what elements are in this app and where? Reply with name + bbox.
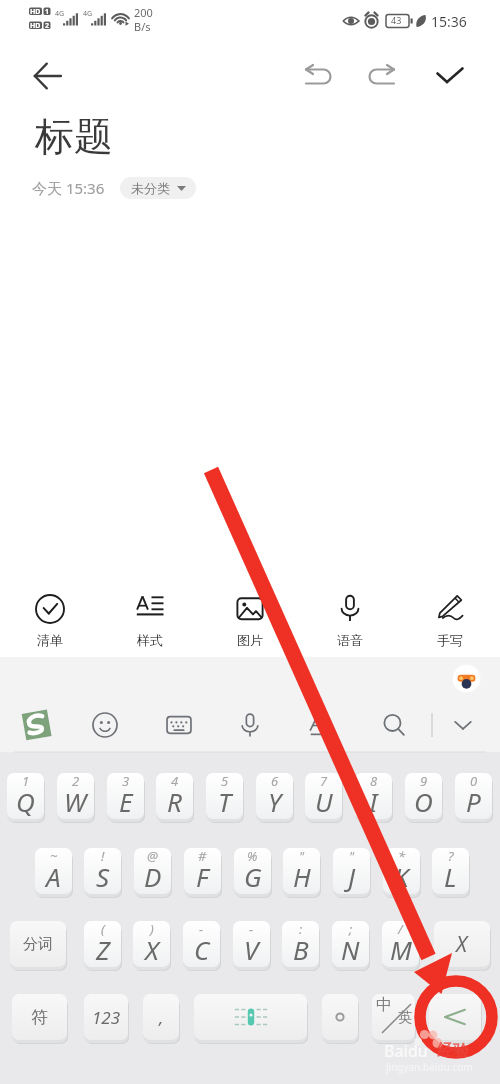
button[interactable]: 样式 [110, 594, 190, 656]
button[interactable]: Enter [429, 994, 481, 1040]
staticText: 清单 [37, 632, 63, 648]
staticText: 4G [83, 9, 93, 19]
button[interactable]: Profile [452, 664, 481, 693]
staticText: L [444, 859, 457, 894]
staticText: B/s [134, 19, 151, 34]
button[interactable]: F [184, 848, 221, 894]
button[interactable]: O [405, 773, 442, 819]
button[interactable]: B [282, 921, 319, 967]
staticText: 标题 [35, 112, 113, 161]
staticText: 5 [221, 773, 229, 790]
staticText: 43 [391, 14, 402, 26]
staticText: ) [150, 921, 154, 938]
staticText: S [96, 859, 110, 894]
staticText: HD [30, 21, 41, 31]
button[interactable]: U [305, 773, 342, 819]
staticText: 15:36 [431, 12, 467, 31]
staticText: ( [101, 921, 105, 938]
staticText: U [315, 784, 333, 819]
staticText: I [369, 784, 378, 819]
staticText: / [398, 921, 403, 938]
staticText: 2 [72, 773, 80, 790]
button[interactable]: E [107, 773, 144, 819]
button[interactable]: X [133, 921, 170, 967]
button[interactable]: Keyboard layout [161, 707, 197, 743]
button[interactable]: L [432, 848, 469, 894]
staticText: 英 [398, 1009, 412, 1027]
staticText: * [398, 848, 406, 865]
button[interactable]: Search [376, 707, 412, 743]
button[interactable]: M [382, 921, 419, 967]
staticText: ! [101, 848, 105, 865]
button[interactable]: Space [194, 994, 307, 1040]
button[interactable]: Z [84, 921, 121, 967]
button[interactable]: R [156, 773, 193, 819]
staticText: G [244, 859, 262, 894]
button[interactable]: W [57, 773, 94, 819]
button[interactable]: S [84, 848, 121, 894]
staticText: X [456, 930, 468, 959]
staticText: 图片 [237, 632, 263, 648]
button[interactable]: P [455, 773, 492, 819]
button[interactable]: 分词 [10, 921, 66, 967]
button[interactable]: Handwriting [301, 707, 337, 743]
button[interactable]: 123 [84, 994, 128, 1040]
button[interactable]: 语音 [310, 594, 390, 656]
button[interactable]: Collapse keyboard [445, 707, 481, 743]
staticText: 经验 [437, 1041, 469, 1061]
staticText: 1 [45, 7, 50, 17]
staticText: P [466, 784, 481, 819]
button[interactable]: Done [427, 53, 473, 99]
staticText: ~ [50, 848, 58, 865]
staticText: O [414, 784, 433, 819]
button[interactable]: 清单 [10, 594, 90, 656]
button[interactable]: C [183, 921, 220, 967]
button[interactable]: 图片 [210, 594, 290, 656]
staticText: T [218, 784, 232, 819]
button[interactable]: V [233, 921, 270, 967]
button[interactable]: A [35, 848, 72, 894]
button[interactable]: T [206, 773, 243, 819]
staticText: 语音 [337, 632, 363, 648]
button[interactable]: K [383, 848, 420, 894]
staticText: 9 [420, 773, 428, 790]
staticText: 分词 [23, 935, 53, 954]
staticText: , [159, 1006, 164, 1029]
button[interactable]: Redo [361, 54, 406, 99]
staticText: N [341, 932, 360, 967]
staticText: 7 [320, 773, 328, 790]
button[interactable]: G [234, 848, 271, 894]
staticText: # [198, 848, 207, 865]
staticText: Z [96, 932, 110, 967]
button[interactable]: 未分类 [120, 177, 196, 199]
button[interactable]: 手写 [410, 594, 490, 656]
staticText: 123 [92, 1006, 121, 1029]
button[interactable]: X [434, 921, 490, 967]
staticText: J [348, 859, 356, 894]
button[interactable]: Sogou input method [18, 707, 54, 743]
button[interactable]: Undo [294, 54, 339, 99]
button[interactable]: 符 [12, 994, 67, 1040]
staticText: Q [16, 784, 35, 819]
button[interactable]: J [333, 848, 370, 894]
button[interactable]: H [283, 848, 320, 894]
staticText: E [119, 784, 133, 819]
staticText: M [390, 932, 412, 967]
button[interactable]: Y [256, 773, 293, 819]
staticText: 8 [370, 773, 378, 790]
staticText: 4 [171, 773, 179, 790]
button[interactable]: D [134, 848, 171, 894]
staticText: - [199, 921, 204, 938]
staticText: H [293, 859, 311, 894]
staticText: D [144, 859, 162, 894]
button[interactable]: Chinese English toggle [372, 994, 415, 1040]
button[interactable]: Period [322, 994, 358, 1040]
button[interactable]: N [332, 921, 369, 967]
button[interactable]: I [355, 773, 392, 819]
staticText: 中 [376, 995, 392, 1015]
button[interactable]: Back [25, 53, 71, 99]
button[interactable]: Emoji [87, 707, 123, 743]
button[interactable]: Q [7, 773, 44, 819]
button[interactable]: , [143, 994, 179, 1040]
button[interactable]: Voice input [232, 707, 268, 743]
